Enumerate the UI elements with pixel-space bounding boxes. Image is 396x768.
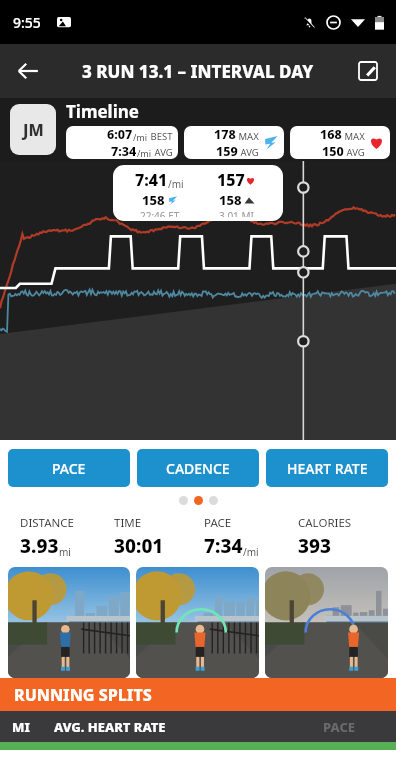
staticText: 393 (298, 533, 331, 559)
button[interactable] (136, 567, 259, 678)
staticText: /mi (133, 131, 148, 143)
staticText: 7:34 (204, 533, 243, 559)
staticText: 158 (142, 191, 165, 209)
button[interactable]: 178 (184, 126, 284, 159)
button[interactable]: 168 (290, 126, 390, 159)
button[interactable]: HEART RATE (266, 449, 388, 487)
button[interactable]: 7:41 (113, 165, 283, 221)
button[interactable]: CADENCE (137, 449, 259, 487)
staticText: /mi (137, 147, 152, 159)
staticText: PACE (204, 515, 232, 531)
staticText: CALORIES (298, 515, 352, 531)
staticText: 3.93 (20, 533, 59, 559)
button[interactable] (265, 567, 388, 678)
button[interactable]: JM (10, 104, 56, 155)
staticText: CADENCE (166, 459, 230, 478)
staticText: 157 (217, 169, 245, 191)
staticText: 30:01 (114, 533, 164, 559)
staticText: 6:07 (107, 126, 133, 143)
staticText: 3.01 MI (219, 209, 254, 217)
staticText: MAX (342, 130, 365, 143)
staticText: 9:55 (13, 13, 41, 32)
staticText: 7:41 (135, 169, 168, 191)
staticText: PACE (323, 718, 356, 736)
staticText: AVG (344, 146, 365, 159)
staticText: 150 (322, 143, 344, 159)
staticText: /mi (243, 545, 259, 559)
staticText: Timeline (66, 100, 139, 123)
staticText: 159 (216, 143, 238, 159)
staticText: 168 (320, 126, 342, 143)
staticText: TIME (114, 515, 142, 531)
staticText: mi (59, 545, 71, 559)
staticText: 3 RUN 13.1 – INTERVAL DAY (82, 60, 314, 83)
staticText: AVG (238, 146, 259, 159)
staticText: PACE (52, 459, 86, 478)
staticText: AVG. HEART RATE (54, 718, 323, 736)
button[interactable]: PACE (8, 449, 130, 487)
button[interactable]: Edit (348, 51, 388, 91)
staticText: RUNNING SPLITS (14, 684, 152, 706)
staticText: 7:34 (111, 143, 137, 159)
staticText: HEART RATE (287, 459, 368, 478)
staticText: BEST (148, 130, 173, 143)
staticText: DISTANCE (20, 515, 74, 531)
button[interactable] (8, 567, 130, 678)
staticText: /mi (168, 177, 184, 191)
button[interactable]: Back (8, 51, 48, 91)
staticText: MI (12, 718, 30, 736)
staticText: 158 (219, 191, 242, 209)
staticText: AVG (152, 146, 173, 159)
staticText: 178 (214, 126, 236, 143)
button[interactable]: 6:07 (66, 126, 178, 159)
staticText: MAX (236, 130, 259, 143)
staticText: 22:46 ET (140, 209, 180, 217)
staticText: JM (23, 119, 44, 141)
